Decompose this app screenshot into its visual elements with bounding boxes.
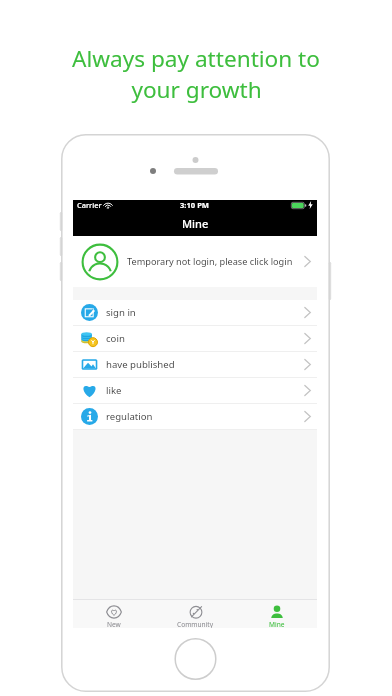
button[interactable]: Temporary not login, please click login — [73, 236, 317, 287]
button[interactable]: like — [73, 378, 317, 403]
button[interactable]: coin — [73, 326, 317, 351]
staticText: your growth — [131, 74, 262, 105]
button[interactable]: have published — [73, 352, 317, 377]
staticText: regulation — [106, 410, 153, 423]
button[interactable]: Community tab — [155, 600, 236, 628]
staticText: Always pay attention to — [72, 43, 320, 74]
button[interactable]: regulation — [73, 404, 317, 429]
staticText: Community — [177, 620, 214, 628]
staticText: have published — [106, 358, 175, 371]
staticText: like — [106, 384, 122, 397]
button[interactable]: New tab — [73, 600, 155, 628]
staticText: Carrier — [77, 200, 102, 210]
staticText: Temporary not login, please click login — [127, 255, 293, 268]
staticText: Mine — [269, 620, 285, 628]
button[interactable]: sign in — [73, 300, 317, 325]
staticText: coin — [106, 332, 125, 345]
staticText: Mine — [182, 216, 209, 231]
staticText: New — [107, 620, 121, 628]
staticText: sign in — [106, 306, 136, 319]
staticText: 3:10 PM — [180, 200, 210, 210]
button[interactable]: Mine tab — [236, 600, 317, 628]
